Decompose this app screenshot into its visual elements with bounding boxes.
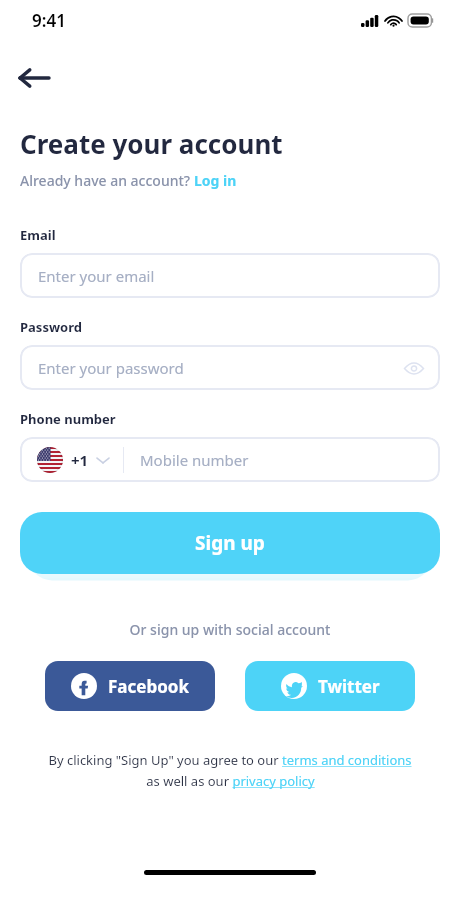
button[interactable]: Sign up: [20, 512, 440, 574]
staticText: By clicking "Sign Up" you agree to our t…: [48, 751, 412, 769]
button[interactable]: Facebook: [45, 661, 215, 711]
staticText: Or sign up with social account: [0, 620, 460, 639]
button[interactable]: Mobile number: [124, 437, 440, 482]
staticText: Facebook: [108, 675, 189, 698]
button[interactable]: Twitter: [245, 661, 415, 711]
button[interactable]: Back: [14, 58, 54, 98]
button[interactable]: Enter your password: [20, 345, 440, 390]
staticText: Enter your email: [38, 266, 155, 286]
button[interactable]: Log in: [194, 171, 237, 190]
staticText: Twitter: [318, 675, 380, 698]
staticText: Create your account: [20, 126, 283, 161]
button[interactable]: Show password: [402, 356, 426, 380]
staticText: Enter your password: [38, 358, 184, 378]
staticText: Sign up: [195, 530, 265, 556]
staticText: as well as our privacy policy: [146, 772, 315, 790]
staticText: Email: [20, 226, 56, 244]
staticText: Phone number: [20, 410, 116, 428]
button[interactable]: Enter your email: [20, 253, 440, 298]
staticText: +1: [71, 450, 89, 470]
staticText: Already have an account?: [20, 171, 194, 190]
button[interactable]: Select country code: [37, 447, 109, 473]
staticText: 9:41: [32, 9, 66, 32]
staticText: Mobile number: [140, 450, 249, 470]
staticText: Password: [20, 318, 82, 336]
staticText: Log in: [194, 171, 237, 190]
